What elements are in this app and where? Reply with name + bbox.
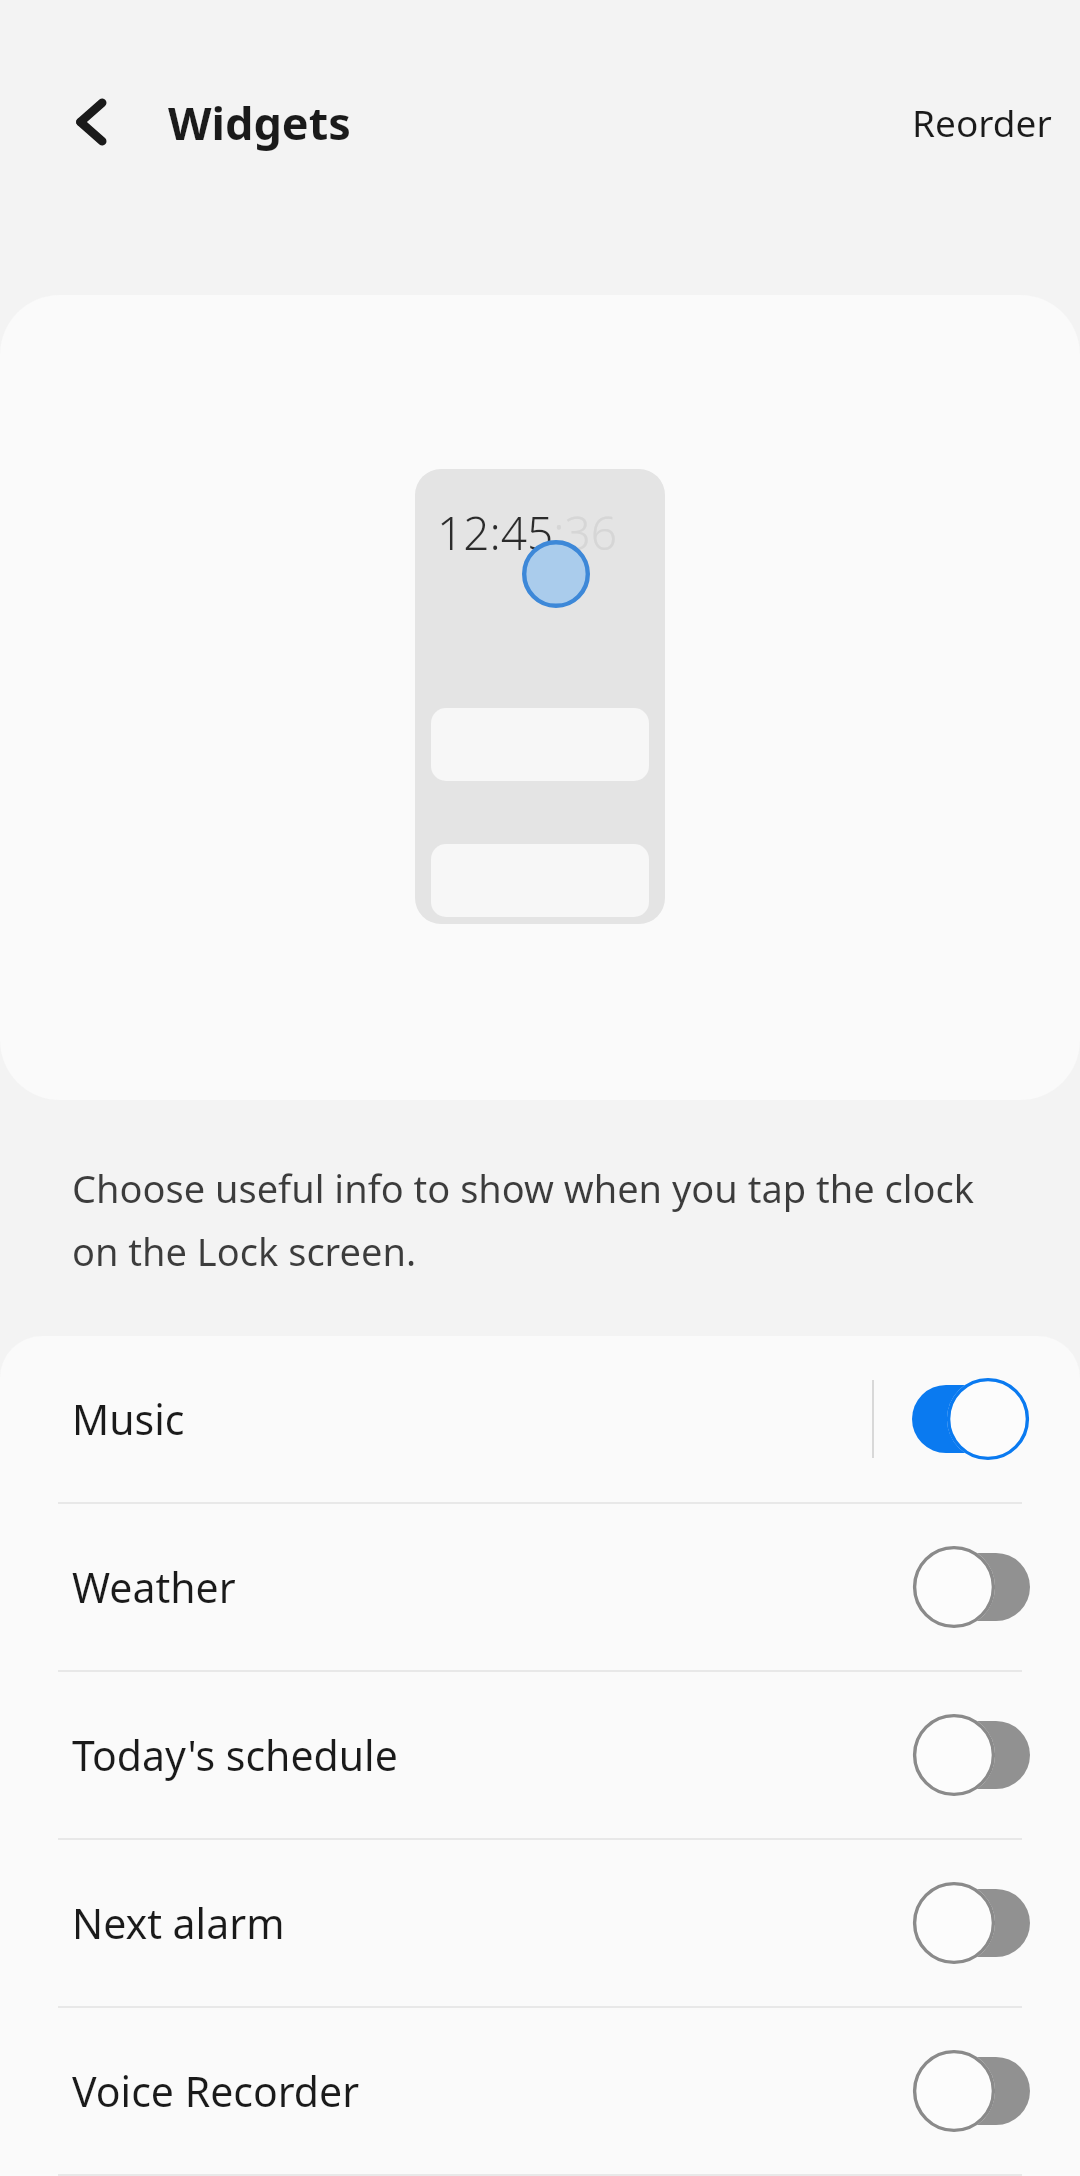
button[interactable]: Today's schedule [0,1672,1080,1838]
button[interactable]: Next alarm [0,1840,1080,2006]
staticText: Today's schedule [72,1727,872,1783]
staticText: Reorder [912,97,1052,147]
button[interactable]: Off [912,1880,1030,1966]
button[interactable]: Off [912,1712,1030,1798]
button[interactable]: Back [48,74,144,170]
staticText: 12:45:36 [437,501,618,564]
button[interactable]: Music [0,1336,1080,1502]
staticText: Weather [72,1559,872,1615]
staticText: Widgets [168,92,351,153]
staticText: Next alarm [72,1895,872,1951]
staticText: Voice Recorder [72,2063,872,2119]
button[interactable]: Off [912,2048,1030,2134]
button[interactable]: Voice Recorder [0,2008,1080,2174]
staticText: Music [72,1391,872,1447]
button[interactable]: Off [912,1544,1030,1630]
button[interactable]: Reorder [884,81,1080,163]
button[interactable]: Weather [0,1504,1080,1670]
staticText: Choose useful info to show when you tap … [72,1162,994,1277]
button[interactable]: On [912,1376,1030,1462]
